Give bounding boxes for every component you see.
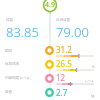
staticText: 12 [56, 72, 66, 83]
staticText: BMI [5, 48, 12, 53]
staticText: 79.00 [56, 23, 89, 41]
staticText: 26.5 [56, 58, 72, 69]
staticText: 31.2 [56, 44, 72, 55]
staticText: 2.7 [56, 87, 68, 98]
staticText: % [92, 65, 95, 69]
button[interactable]: 目標まで残り 4.9 kg [41, 0, 59, 13]
staticText: 骨量 [5, 90, 13, 95]
staticText: レベル [85, 79, 95, 83]
button[interactable]: 体脂肪率 [0, 57, 100, 71]
staticText: 内臓脂肪レベル [5, 76, 31, 81]
staticText: 83.85 [6, 23, 39, 41]
staticText: 体脂肪率 [5, 62, 20, 67]
button[interactable]: 内臓脂肪レベル [0, 71, 100, 85]
staticText: 目標体重 [56, 18, 70, 22]
button[interactable]: 目標体重 [50, 16, 100, 41]
button[interactable]: BMI [0, 43, 100, 57]
staticText: 体重 [6, 18, 13, 22]
staticText: kg [48, 10, 52, 14]
staticText: 4.9 [45, 0, 55, 10]
button[interactable]: 骨量 [0, 85, 100, 99]
button[interactable]: 体重 [0, 16, 49, 41]
staticText: kg [91, 94, 95, 98]
